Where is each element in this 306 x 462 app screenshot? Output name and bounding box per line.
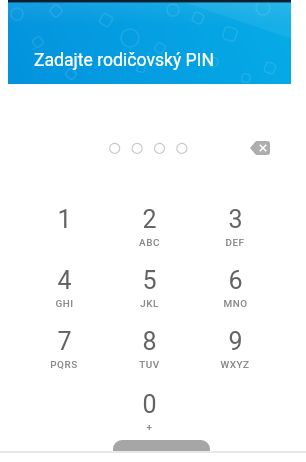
button[interactable]: 9 — [196, 327, 274, 385]
button[interactable]: 0 — [110, 390, 188, 448]
button[interactable]: 7 — [25, 327, 103, 385]
staticText: 4 — [57, 266, 72, 295]
staticText: MNO — [223, 298, 248, 310]
staticText: WXYZ — [220, 359, 250, 371]
button[interactable]: 5 — [110, 266, 188, 324]
staticText: DEF — [225, 237, 245, 249]
staticText: 2 — [142, 205, 157, 234]
staticText: 1 — [57, 205, 72, 234]
button[interactable]: 1 — [25, 205, 103, 263]
button[interactable]: Home — [113, 440, 210, 451]
staticText: 3 — [228, 205, 243, 234]
button[interactable]: 2 — [110, 205, 188, 263]
staticText: JKL — [140, 298, 159, 310]
button[interactable]: 6 — [196, 266, 274, 324]
staticText: 6 — [228, 266, 243, 295]
button[interactable]: Zadajte rodičovský PIN — [8, 0, 291, 84]
staticText: Zadajte rodičovský PIN — [34, 50, 215, 71]
button[interactable]: 3 — [196, 205, 274, 263]
staticText: + — [146, 422, 153, 434]
button[interactable]: Backspace — [245, 135, 274, 161]
staticText: 0 — [142, 390, 157, 419]
button[interactable]: 4 — [25, 266, 103, 324]
staticText: 8 — [142, 327, 157, 356]
staticText: 7 — [57, 327, 72, 356]
staticText: 5 — [142, 266, 157, 295]
staticText: PQRS — [50, 359, 78, 371]
staticText: ABC — [139, 237, 160, 249]
staticText: TUV — [139, 359, 160, 371]
button[interactable]: 8 — [110, 327, 188, 385]
staticText: 9 — [228, 327, 243, 356]
staticText: GHI — [55, 298, 74, 310]
